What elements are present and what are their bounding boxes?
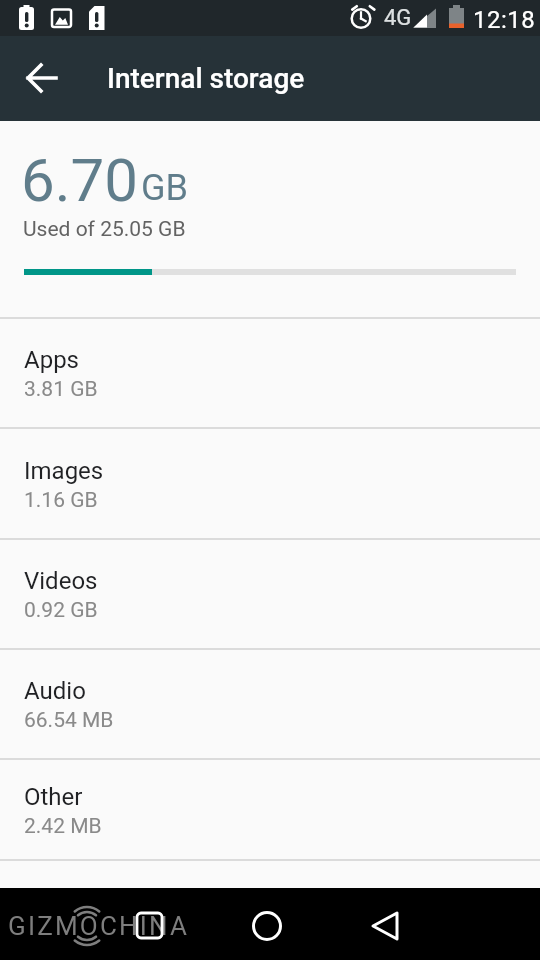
staticText: 0.92 GB [24, 598, 98, 623]
button[interactable]: Videos [0, 540, 540, 650]
staticText: Apps [24, 346, 79, 374]
staticText: GB [141, 167, 188, 209]
button[interactable]: Audio [0, 650, 540, 760]
staticText: Internal storage [107, 62, 305, 95]
button[interactable]: 6.70 [0, 121, 540, 319]
staticText: 2.42 MB [24, 814, 102, 839]
button[interactable]: Other [0, 760, 540, 861]
button[interactable]: Apps [0, 319, 540, 429]
staticText: 4G [384, 5, 412, 31]
staticText: GIZMOCHINA [8, 911, 190, 941]
staticText: 66.54 MB [24, 708, 114, 733]
staticText: Used of 25.05 GB [23, 217, 186, 242]
staticText: Other [24, 783, 83, 811]
button[interactable] [246, 905, 288, 947]
button[interactable] [129, 905, 171, 947]
staticText: 1.16 GB [24, 488, 98, 513]
staticText: Audio [24, 677, 86, 705]
staticText: 6.70 [21, 145, 138, 215]
button[interactable]: Images [0, 429, 540, 540]
staticText: 12:18 [473, 6, 536, 34]
staticText: 3.81 GB [24, 377, 98, 402]
button[interactable] [363, 905, 405, 947]
staticText: Images [24, 457, 104, 485]
button[interactable] [14, 50, 70, 106]
staticText: Videos [24, 567, 98, 595]
